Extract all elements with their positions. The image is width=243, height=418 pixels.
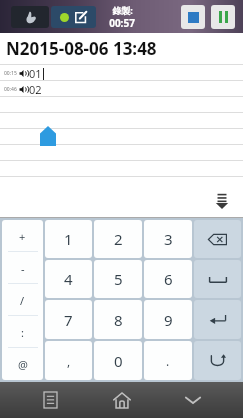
staticText: 2 bbox=[114, 229, 123, 249]
button[interactable]: , bbox=[45, 341, 92, 380]
staticText: 9 bbox=[164, 310, 173, 330]
button[interactable]: 5 bbox=[94, 260, 142, 298]
staticText: + bbox=[19, 229, 26, 244]
staticText: 5 bbox=[114, 269, 123, 289]
button[interactable]: Pointer bbox=[11, 6, 49, 28]
staticText: - bbox=[21, 261, 25, 276]
staticText: 00:46 bbox=[4, 86, 17, 93]
button[interactable]: : bbox=[2, 316, 43, 348]
staticText: 錄製: bbox=[112, 4, 133, 16]
staticText: 4 bbox=[64, 269, 73, 289]
button[interactable] bbox=[0, 97, 243, 113]
button[interactable] bbox=[0, 145, 243, 161]
staticText: 7 bbox=[64, 310, 73, 330]
button[interactable]: 9 bbox=[144, 300, 192, 339]
button[interactable]: Stop bbox=[181, 5, 205, 29]
button[interactable]: Space bbox=[194, 260, 241, 298]
staticText: 3 bbox=[164, 229, 173, 249]
button[interactable]: + bbox=[2, 220, 43, 252]
button[interactable]: Pause bbox=[211, 5, 235, 29]
staticText: 02 bbox=[29, 82, 42, 97]
button[interactable]: 0 bbox=[94, 341, 142, 380]
button[interactable]: - bbox=[2, 252, 43, 284]
staticText: 00:57 bbox=[109, 16, 135, 30]
staticText: 6 bbox=[164, 269, 173, 289]
button[interactable]: Backspace bbox=[194, 220, 241, 258]
button[interactable]: Undo bbox=[194, 341, 241, 380]
button[interactable]: 00:46 bbox=[0, 81, 243, 97]
staticText: / bbox=[20, 293, 25, 308]
button[interactable]: / bbox=[2, 284, 43, 316]
button[interactable]: 00:15 bbox=[0, 65, 243, 81]
staticText: : bbox=[21, 325, 24, 340]
staticText: 8 bbox=[114, 310, 123, 330]
button[interactable] bbox=[0, 161, 243, 177]
staticText: , bbox=[67, 353, 71, 369]
staticText: 01 bbox=[29, 66, 42, 81]
button[interactable]: Home bbox=[100, 382, 144, 418]
button[interactable]: 8 bbox=[94, 300, 142, 339]
button[interactable]: 1 bbox=[45, 220, 92, 258]
button[interactable]: Record and edit bbox=[51, 6, 96, 28]
staticText: 1 bbox=[64, 229, 73, 249]
button[interactable]: . bbox=[144, 341, 192, 380]
staticText: 00:15 bbox=[4, 70, 17, 77]
staticText: 0 bbox=[114, 351, 123, 371]
staticText: N2015-08-06 13:48 bbox=[6, 37, 157, 60]
button[interactable]: @ bbox=[2, 348, 43, 380]
button[interactable]: Menu bbox=[28, 382, 72, 418]
staticText: @ bbox=[18, 357, 28, 372]
button[interactable] bbox=[0, 129, 243, 145]
button[interactable]: Enter bbox=[194, 300, 241, 339]
button[interactable]: Back bbox=[171, 382, 215, 418]
button[interactable]: Hide keyboard bbox=[211, 190, 233, 212]
button[interactable]: 6 bbox=[144, 260, 192, 298]
button[interactable]: 3 bbox=[144, 220, 192, 258]
button[interactable]: 7 bbox=[45, 300, 92, 339]
staticText: . bbox=[166, 353, 170, 369]
button[interactable]: 2 bbox=[94, 220, 142, 258]
button[interactable]: 4 bbox=[45, 260, 92, 298]
button[interactable] bbox=[0, 113, 243, 129]
